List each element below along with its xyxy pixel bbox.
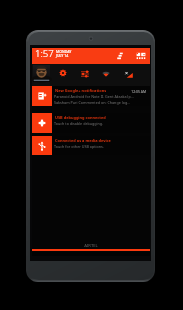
staticText: Paranoid Android for Note II. Gent Aksak… [54, 94, 147, 99]
button[interactable]: Settings [59, 69, 67, 77]
button[interactable]: Mobile signal [124, 70, 133, 79]
staticText: USB debugging connected [55, 115, 141, 120]
button[interactable]: USB debugging connected [32, 113, 150, 133]
staticText: JULY 14 [56, 53, 69, 58]
button[interactable]: Connected as a media device [32, 136, 150, 155]
button[interactable]: Quick settings [136, 52, 146, 60]
staticText: MONDAY [56, 49, 72, 54]
button[interactable]: New Google+ notifications [32, 86, 150, 106]
button[interactable]: User profile [33, 65, 50, 82]
staticText: AIRTEL [32, 243, 150, 249]
staticText: 1:57 [35, 47, 54, 60]
staticText: Touch for other USB options. [54, 144, 147, 149]
staticText: Connected as a media device [55, 138, 141, 143]
button[interactable]: Brightness [81, 70, 89, 78]
button[interactable]: Wi-Fi [102, 70, 110, 78]
staticText: 12:05 AM [28, 89, 146, 94]
staticText: New Google+ notifications [55, 88, 141, 93]
button[interactable]: Network indicator [117, 52, 123, 60]
staticText: Touch to disable debugging. [54, 121, 147, 126]
staticText: Saksham Puri Commented on: Change log... [54, 100, 147, 105]
